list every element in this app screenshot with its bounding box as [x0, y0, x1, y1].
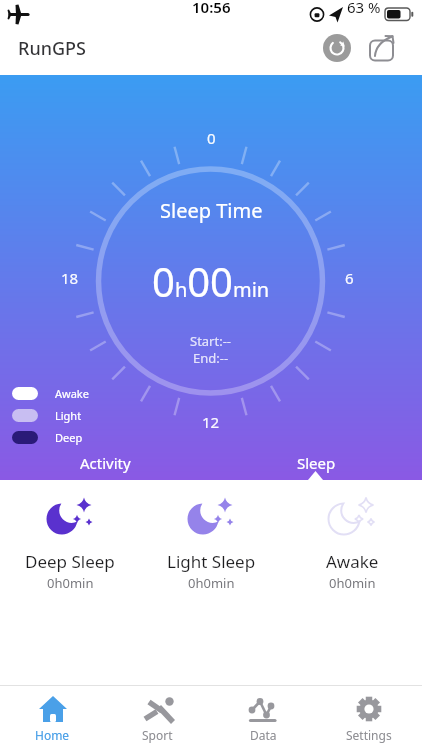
staticText: Sleep	[297, 453, 336, 473]
staticText: End:--	[193, 349, 229, 367]
staticText: 63 %	[347, 0, 381, 17]
staticText: 0h0min	[47, 574, 94, 592]
staticText: Awake	[55, 386, 89, 401]
staticText: Activity	[80, 453, 131, 473]
staticText: Deep Sleep	[25, 550, 115, 573]
button[interactable]: Awake	[282, 480, 422, 592]
staticText: Deep	[55, 430, 83, 445]
staticText: RunGPS	[18, 36, 86, 61]
button[interactable]: Settings	[316, 686, 422, 750]
staticText: 0h00min	[152, 254, 270, 308]
staticText: Start:--	[190, 332, 232, 350]
button[interactable]: Deep Sleep	[0, 480, 140, 592]
staticText: Sleep Time	[160, 197, 263, 224]
button[interactable]: Light Sleep	[141, 480, 281, 592]
staticText: 6	[345, 268, 354, 288]
staticText: 10:56	[192, 0, 231, 17]
button[interactable]: Data	[210, 686, 316, 750]
staticText: Settings	[346, 727, 392, 743]
staticText: Awake	[326, 550, 379, 573]
staticText: Home	[35, 727, 70, 743]
staticText: 0h0min	[329, 574, 376, 592]
staticText: Light Sleep	[167, 550, 256, 573]
staticText: 0	[207, 128, 216, 148]
staticText: 18	[61, 268, 79, 288]
button[interactable]: Home	[0, 686, 105, 750]
button[interactable]: Activity	[0, 446, 211, 480]
button[interactable]: Sport	[105, 686, 210, 750]
staticText: Data	[250, 727, 277, 743]
button[interactable]	[323, 34, 351, 62]
button[interactable]	[368, 33, 398, 63]
button[interactable]: Sleep	[211, 446, 422, 480]
staticText: 0h0min	[188, 574, 235, 592]
staticText: Light	[55, 408, 82, 423]
staticText: Sport	[142, 727, 173, 743]
staticText: 12	[202, 412, 220, 432]
